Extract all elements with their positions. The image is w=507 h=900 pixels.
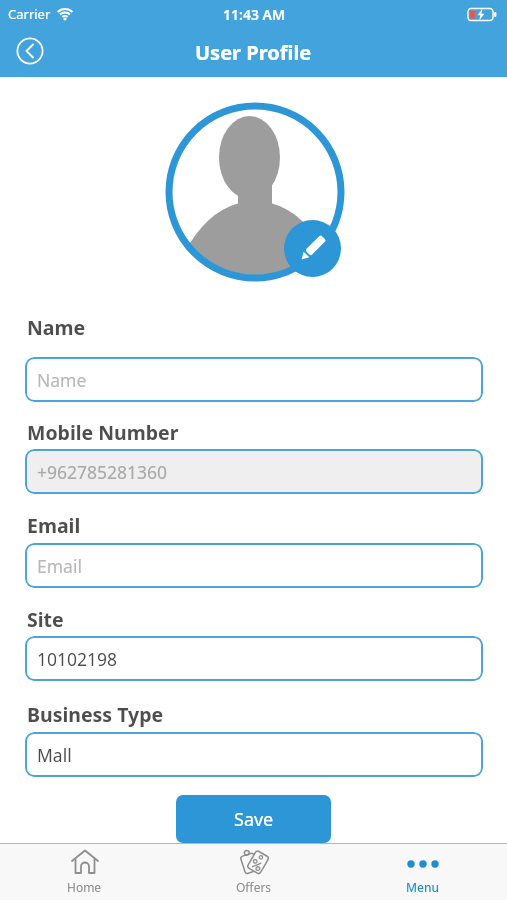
staticText: Offers	[236, 879, 272, 895]
staticText: Menu	[406, 879, 439, 895]
staticText: Email	[27, 512, 81, 539]
button[interactable]: Offers	[169, 844, 338, 900]
staticText: Site	[27, 606, 64, 633]
staticText: Home	[67, 879, 102, 895]
staticText: Name	[37, 368, 87, 392]
button[interactable]: Email	[25, 543, 483, 588]
staticText: Save	[234, 807, 274, 832]
staticText: User Profile	[195, 39, 312, 66]
button[interactable]: Home	[0, 844, 169, 900]
button[interactable]: +962785281360	[25, 449, 483, 494]
staticText: +962785281360	[37, 460, 168, 484]
button[interactable]	[16, 37, 44, 65]
button[interactable]: Mall	[25, 732, 483, 777]
staticText: Mall	[37, 743, 72, 767]
staticText: Name	[27, 314, 86, 341]
staticText: Carrier	[8, 5, 51, 23]
staticText: Business Type	[27, 701, 164, 728]
button[interactable]: Menu	[338, 844, 507, 900]
button[interactable]: 10102198	[25, 636, 483, 681]
staticText: 10102198	[37, 647, 118, 671]
button[interactable]: Name	[25, 357, 483, 402]
staticText: 11:43 AM	[223, 5, 285, 24]
button[interactable]	[284, 220, 341, 277]
button[interactable]: Save	[176, 795, 331, 843]
staticText: Mobile Number	[27, 419, 179, 446]
staticText: Email	[37, 554, 82, 578]
